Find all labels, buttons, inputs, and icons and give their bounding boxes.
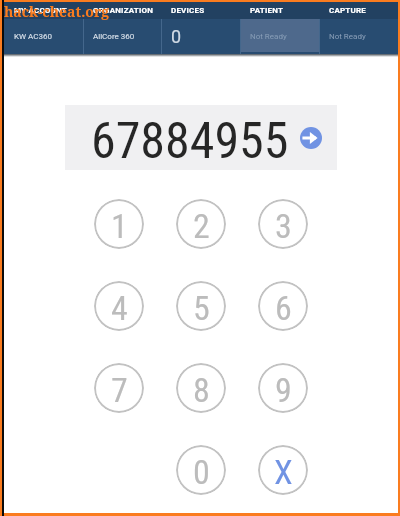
button[interactable]: Submit bbox=[300, 127, 322, 149]
staticText: AllCore 360 bbox=[93, 32, 135, 41]
staticText: 2 bbox=[193, 206, 210, 246]
staticText: 3 bbox=[275, 206, 292, 246]
staticText: 9 bbox=[275, 370, 292, 410]
staticText: 5 bbox=[193, 288, 210, 328]
staticText: ORGANIZATION bbox=[93, 6, 154, 15]
staticText: Not Ready bbox=[329, 32, 366, 41]
button[interactable]: 4 bbox=[94, 281, 144, 331]
staticText: 6 bbox=[275, 288, 292, 328]
staticText: X bbox=[274, 452, 293, 492]
button[interactable]: Not Ready bbox=[319, 19, 398, 54]
button[interactable]: 3 bbox=[258, 199, 308, 249]
button[interactable]: 6 bbox=[258, 281, 308, 331]
staticText: Not Ready bbox=[250, 32, 287, 41]
button[interactable]: 2 bbox=[176, 199, 226, 249]
staticText: CAPTURE bbox=[329, 6, 367, 15]
button[interactable]: 0 bbox=[176, 445, 226, 495]
button[interactable]: MY ACCOUNT bbox=[4, 2, 83, 19]
button[interactable]: X bbox=[258, 445, 308, 495]
button[interactable]: Not Ready bbox=[240, 19, 319, 54]
button[interactable]: 7 bbox=[94, 363, 144, 413]
staticText: 0 bbox=[193, 452, 210, 492]
staticText: 4 bbox=[111, 288, 128, 328]
staticText: 67884955 bbox=[91, 112, 289, 171]
button[interactable]: 1 bbox=[94, 199, 144, 249]
staticText: MY ACCOUNT bbox=[14, 6, 67, 15]
staticText: 8 bbox=[193, 370, 210, 410]
staticText: KW AC360 bbox=[14, 32, 52, 41]
staticText: PATIENT bbox=[250, 6, 284, 15]
button[interactable]: PATIENT bbox=[240, 2, 319, 19]
button[interactable]: CAPTURE bbox=[319, 2, 398, 19]
staticText: 1 bbox=[111, 206, 128, 246]
button[interactable]: 8 bbox=[176, 363, 226, 413]
staticText: DEVICES bbox=[171, 6, 205, 15]
button[interactable]: AllCore 360 bbox=[83, 19, 161, 54]
button[interactable]: ORGANIZATION bbox=[83, 2, 161, 19]
button[interactable]: DEVICES bbox=[161, 2, 240, 19]
button[interactable]: 5 bbox=[176, 281, 226, 331]
button[interactable]: 9 bbox=[258, 363, 308, 413]
button[interactable]: 0 bbox=[161, 19, 240, 54]
staticText: 7 bbox=[111, 370, 128, 410]
button[interactable]: KW AC360 bbox=[4, 19, 83, 54]
staticText: hack-cheat.org bbox=[4, 2, 110, 21]
staticText: 0 bbox=[171, 26, 182, 47]
